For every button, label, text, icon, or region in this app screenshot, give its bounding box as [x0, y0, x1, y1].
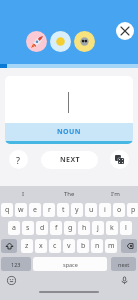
button[interactable]: y — [71, 203, 83, 217]
button[interactable]: j — [92, 221, 104, 235]
button[interactable]: Category — [50, 31, 71, 52]
button[interactable]: v — [63, 239, 75, 253]
staticText: g — [68, 223, 73, 233]
button[interactable]: Category — [26, 31, 47, 52]
staticText: w — [18, 205, 24, 215]
button[interactable]: w — [15, 203, 27, 217]
staticText: n — [95, 241, 100, 251]
staticText: e — [33, 205, 37, 215]
staticText: space — [63, 261, 78, 268]
staticText: NOUN — [57, 127, 81, 137]
button[interactable]: Help — [9, 150, 28, 169]
button[interactable]: The — [46, 186, 92, 201]
button[interactable]: Dictate — [120, 276, 130, 286]
button[interactable]: 123 — [1, 257, 31, 271]
button[interactable]: l — [120, 221, 132, 235]
button[interactable]: Shuffle — [110, 150, 129, 169]
staticText: l — [125, 223, 127, 233]
staticText: j — [97, 223, 99, 233]
staticText: o — [117, 205, 122, 215]
button[interactable]: z — [21, 239, 33, 253]
button[interactable]: h — [78, 221, 90, 235]
staticText: i — [104, 205, 106, 215]
staticText: u — [89, 205, 94, 215]
staticText: y — [75, 205, 79, 215]
staticText: 123 — [11, 261, 21, 268]
button[interactable]: m — [105, 239, 117, 253]
button[interactable]: b — [77, 239, 89, 253]
button[interactable]: x — [35, 239, 47, 253]
staticText: m — [108, 241, 115, 251]
button[interactable]: g — [64, 221, 76, 235]
button[interactable]: d — [36, 221, 48, 235]
button[interactable]: p — [127, 203, 138, 217]
staticText: x — [39, 241, 43, 251]
button[interactable]: s — [22, 221, 34, 235]
staticText: NEXT — [60, 155, 80, 165]
button[interactable]: I'm — [92, 186, 138, 201]
button[interactable]: I — [0, 186, 46, 201]
staticText: c — [53, 241, 57, 251]
staticText: h — [82, 223, 87, 233]
staticText: b — [81, 241, 86, 251]
staticText: I'm — [111, 190, 120, 198]
button[interactable]: f — [50, 221, 62, 235]
staticText: d — [40, 223, 45, 233]
button[interactable]: next — [111, 257, 136, 271]
button[interactable]: Category — [74, 31, 95, 52]
button[interactable]: r — [43, 203, 55, 217]
staticText: r — [48, 205, 51, 215]
button[interactable]: q — [1, 203, 13, 217]
staticText: v — [67, 241, 71, 251]
button[interactable]: n — [91, 239, 103, 253]
button[interactable]: o — [113, 203, 125, 217]
staticText: a — [12, 223, 16, 233]
button[interactable]: a — [8, 221, 20, 235]
button[interactable]: Key — [1, 239, 17, 253]
button[interactable]: NEXT — [41, 151, 98, 169]
staticText: f — [55, 223, 58, 233]
button[interactable]: k — [106, 221, 118, 235]
staticText: z — [25, 241, 29, 251]
button[interactable]: e — [29, 203, 41, 217]
staticText: s — [26, 223, 30, 233]
staticText: next — [118, 261, 130, 268]
staticText: The — [64, 190, 75, 198]
staticText: q — [5, 205, 10, 215]
staticText: ? — [16, 154, 21, 166]
staticText: p — [131, 205, 136, 215]
button[interactable]: u — [85, 203, 97, 217]
button[interactable]: space — [33, 257, 107, 271]
button[interactable]: Close — [116, 22, 134, 40]
staticText: t — [62, 205, 65, 215]
staticText: k — [110, 223, 114, 233]
button[interactable]: i — [99, 203, 111, 217]
staticText: I — [22, 190, 25, 198]
button[interactable]: Key — [121, 239, 137, 253]
button[interactable]: t — [57, 203, 69, 217]
button[interactable]: c — [49, 239, 61, 253]
button[interactable]: Emoji — [7, 276, 17, 286]
